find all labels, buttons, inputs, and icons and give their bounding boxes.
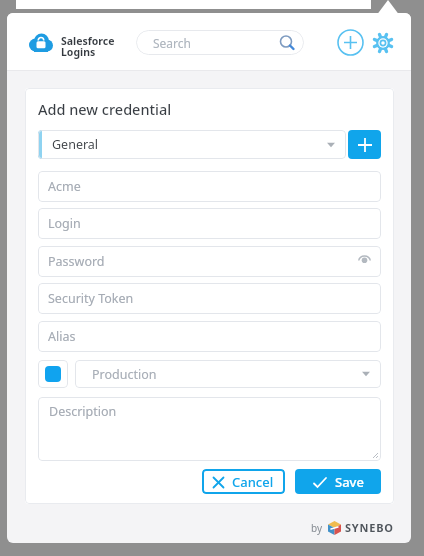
staticText: Save — [335, 473, 364, 491]
button[interactable]: Production — [75, 360, 381, 388]
button[interactable] — [336, 28, 365, 57]
staticText: Add new credential — [38, 99, 172, 119]
staticText: Logins — [61, 45, 96, 59]
staticText: Password — [48, 253, 105, 270]
staticText: SYNEBO — [345, 520, 394, 535]
staticText: Salesforce — [61, 34, 115, 48]
staticText: Acme — [48, 178, 81, 195]
staticText: Production — [92, 366, 157, 383]
button[interactable]: Alias — [38, 321, 381, 352]
staticText: Login — [48, 215, 81, 232]
staticText: Alias — [48, 328, 76, 345]
button[interactable]: Save — [295, 469, 381, 494]
button[interactable]: Search — [136, 30, 304, 55]
staticText: Description — [49, 403, 117, 420]
button[interactable]: Password — [38, 246, 381, 277]
button[interactable] — [348, 130, 381, 159]
button[interactable] — [371, 31, 395, 55]
button[interactable]: Security Token — [38, 283, 381, 314]
button[interactable]: Acme — [38, 171, 381, 202]
staticText: General — [52, 136, 99, 153]
button[interactable]: Cancel — [202, 469, 285, 494]
button[interactable]: Login — [38, 208, 381, 239]
button[interactable]: General — [38, 130, 346, 159]
button[interactable] — [38, 360, 68, 388]
staticText: by — [311, 521, 323, 535]
button[interactable]: Description — [38, 397, 381, 461]
staticText: Cancel — [232, 473, 274, 491]
staticText: Search — [153, 35, 191, 51]
staticText: Security Token — [48, 290, 134, 307]
